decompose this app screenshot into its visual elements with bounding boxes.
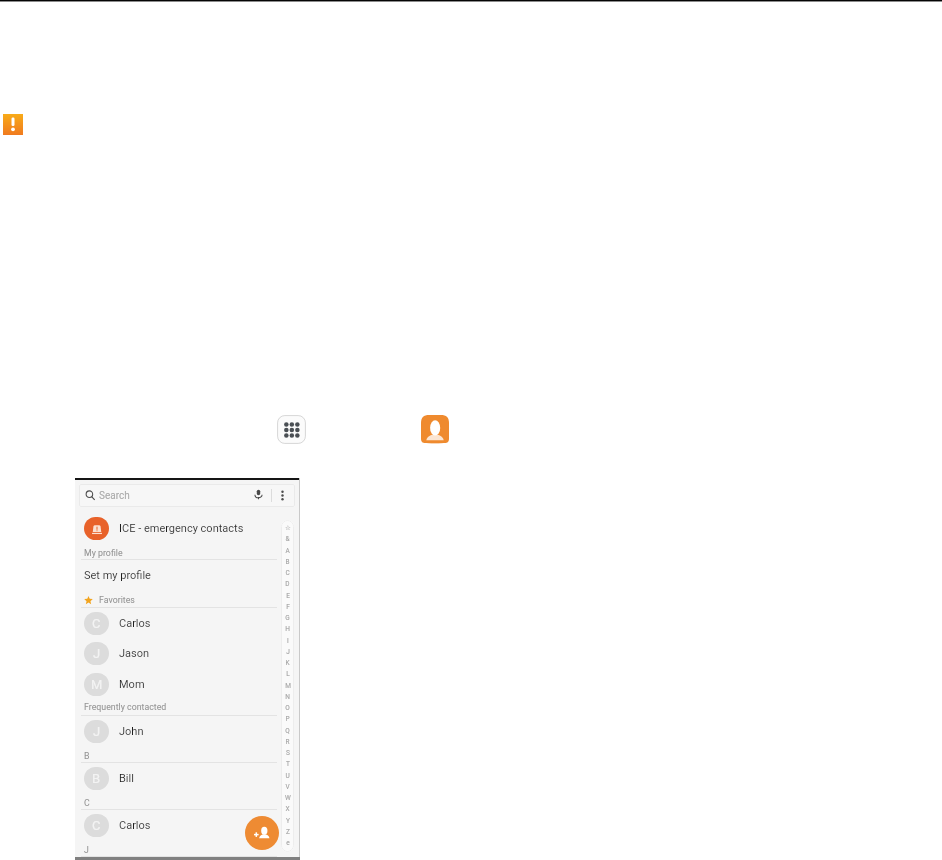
button[interactable]: B [75,767,300,790]
staticText: Carlos [119,819,151,832]
staticText: Favorites [99,595,135,605]
staticText: A [285,547,290,555]
staticText: B [92,771,101,786]
staticText: Frequently contacted [84,702,167,712]
button[interactable]: M [75,673,300,696]
staticText: Search [99,490,130,502]
staticText: L [286,670,290,678]
staticText: G [285,614,290,622]
staticText: P [285,715,290,723]
staticText: John [119,725,144,738]
button[interactable]: Add contact [245,816,279,850]
staticText: E [286,592,290,600]
button[interactable]: C [75,612,300,635]
staticText: M [285,682,291,690]
staticText: X [285,805,290,813]
staticText: & [285,535,290,543]
staticText: Set my profile [84,569,151,582]
staticText: Carlos [119,617,151,630]
staticText: J [93,724,101,739]
staticText: B [285,558,290,566]
button[interactable]: Important note [3,114,23,135]
button[interactable]: Alphabet index [281,520,294,852]
staticText: O [285,704,290,712]
staticText: ☆ [285,524,291,532]
button[interactable]: C [75,796,90,810]
staticText: C [92,616,101,631]
staticText: R [285,738,290,746]
button[interactable]: Set my profile [84,566,234,585]
other: Voice search [253,489,264,500]
staticText: C [84,798,90,808]
staticText: H [285,625,290,633]
staticText: J [93,646,101,661]
button[interactable]: C [75,814,300,837]
staticText: Jason [119,647,150,660]
staticText: ICE - emergency contacts [119,522,244,535]
button[interactable]: Search [79,484,295,507]
staticText: V [285,783,290,791]
staticText: Q [285,727,290,735]
staticText: My profile [84,548,123,558]
button[interactable]: My profile [75,546,123,560]
staticText: M [91,677,103,692]
button[interactable]: B [75,749,90,763]
staticText: F [286,603,290,611]
staticText: K [285,659,290,667]
staticText: D [285,580,290,588]
staticText: Bill [119,772,134,785]
button[interactable]: ICE - emergency contacts [75,517,300,540]
button[interactable]: Favorites [75,593,135,607]
staticText: B [84,751,90,761]
staticText: T [286,760,290,768]
staticText: Y [286,817,290,825]
staticText: U [285,772,290,780]
staticText: I [287,637,289,645]
staticText: J [84,845,89,855]
button[interactable]: Contacts app [421,415,449,443]
staticText: W [285,794,291,802]
staticText: C [92,818,101,833]
button[interactable]: Frequently contacted [75,700,167,714]
button[interactable]: J [75,720,300,743]
staticText: S [286,749,290,757]
staticText: Mom [119,678,145,691]
staticText: N [285,693,290,701]
staticText: е [286,839,290,847]
button[interactable]: J [75,843,89,857]
other: More options [279,490,286,501]
staticText: C [285,569,290,577]
staticText: Z [286,828,290,836]
button[interactable]: Phone dialer app [277,415,306,444]
button[interactable]: J [75,642,300,665]
staticText: J [286,648,290,656]
